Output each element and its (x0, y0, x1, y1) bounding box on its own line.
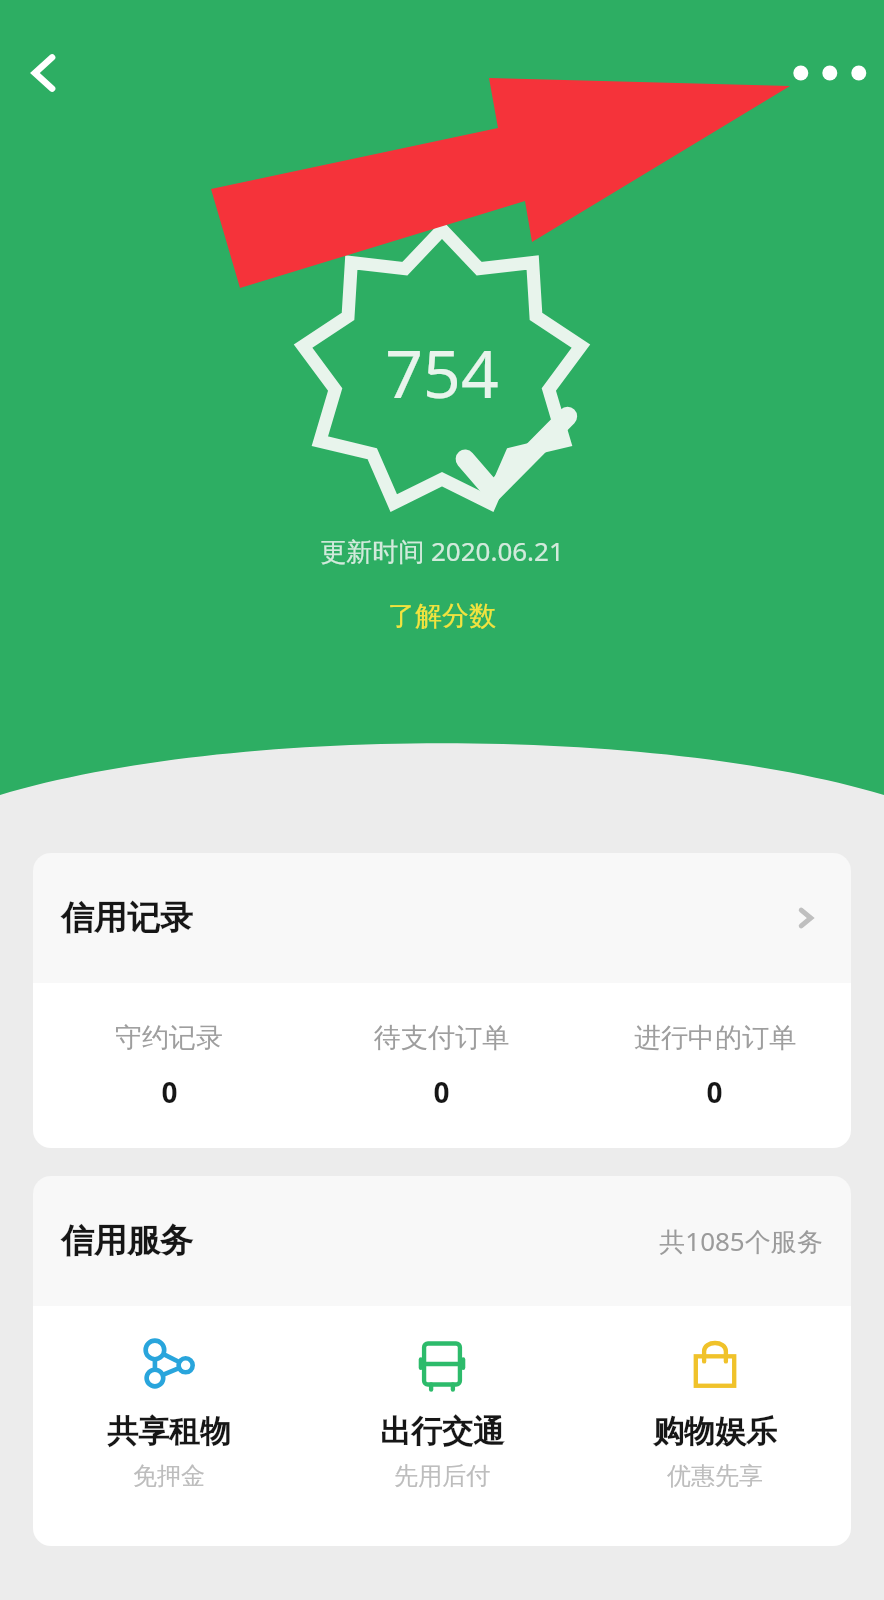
staticText: 信用服务 (61, 1220, 193, 1262)
button[interactable]: 共享租物 (33, 1306, 305, 1546)
button[interactable]: 了解分数 (370, 595, 514, 637)
staticText: 0 (433, 1073, 450, 1111)
staticText: 先用后付 (394, 1461, 490, 1491)
staticText: 出行交通 (380, 1412, 504, 1451)
staticText: 购物娱乐 (653, 1412, 777, 1451)
staticText: 0 (161, 1073, 178, 1111)
button[interactable]: 进行中的订单 (578, 983, 851, 1148)
staticText: 信用记录 (61, 897, 193, 939)
staticText: 了解分数 (388, 599, 496, 633)
button[interactable]: 信用服务 (33, 1176, 851, 1306)
button[interactable]: 待支付订单 (305, 983, 578, 1148)
button[interactable]: Back (14, 44, 72, 102)
button[interactable]: 出行交通 (305, 1306, 578, 1546)
staticText: 待支付订单 (374, 1021, 509, 1055)
staticText: 共1085个服务 (659, 1223, 823, 1259)
staticText: 0 (706, 1073, 723, 1111)
staticText: 进行中的订单 (634, 1021, 796, 1055)
button[interactable]: 守约记录 (33, 983, 305, 1148)
button[interactable]: 购物娱乐 (578, 1306, 851, 1546)
staticText: 共享租物 (107, 1412, 231, 1451)
staticText: 免押金 (133, 1461, 205, 1491)
staticText: 优惠先享 (667, 1461, 763, 1491)
staticText: 更新时间 2020.06.21 (320, 533, 564, 569)
staticText: 754 (385, 327, 499, 417)
staticText: 守约记录 (115, 1021, 223, 1055)
button[interactable]: More options (788, 46, 864, 98)
button[interactable]: 信用记录 (33, 853, 851, 983)
